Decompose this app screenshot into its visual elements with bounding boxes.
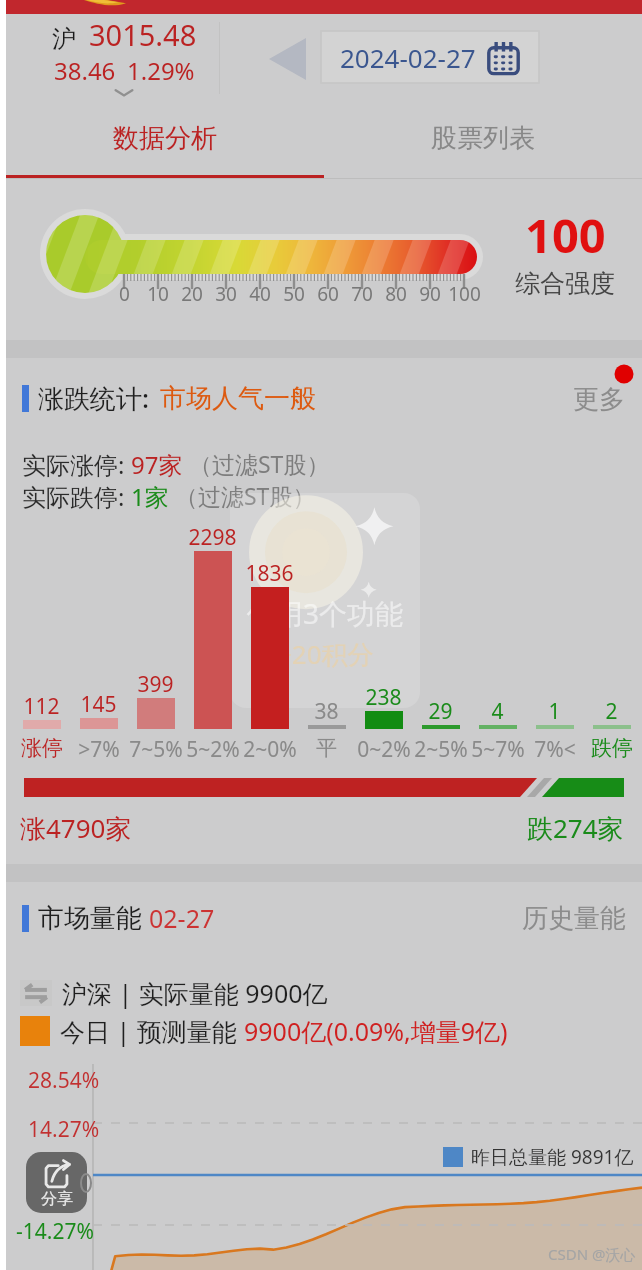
staticText: 2298 xyxy=(188,523,237,552)
staticText: 9900亿(0.09%,增量9亿) xyxy=(244,1014,508,1048)
staticText: 今日 | 预测量能 xyxy=(60,1014,244,1048)
staticText: 市场人气一般 xyxy=(160,382,316,415)
button[interactable]: 数据分析 xyxy=(6,102,324,175)
staticText: 10 xyxy=(147,281,169,307)
staticText: >7% xyxy=(78,735,120,764)
staticText: 7~5% xyxy=(129,735,183,764)
staticText: 238 xyxy=(365,683,402,712)
staticText: 38.46 xyxy=(54,54,116,87)
staticText: CSDN @沃心 xyxy=(548,1244,636,1264)
staticText: 综合强度 xyxy=(515,268,615,299)
staticText: 昨日总量能 9891亿 xyxy=(471,1144,634,1170)
staticText: 2024-02-27 xyxy=(340,40,476,75)
button[interactable]: Share xyxy=(26,1152,87,1213)
staticText: 112 xyxy=(23,692,60,721)
staticText: 80 xyxy=(385,281,407,307)
staticText: 使用3个功能 xyxy=(247,594,404,632)
staticText: 70 xyxy=(351,281,373,307)
staticText: 实际涨停: xyxy=(22,448,131,481)
staticText: 14.27% xyxy=(28,1115,100,1144)
staticText: 沪 xyxy=(52,24,76,54)
staticText: 100 xyxy=(448,281,481,307)
staticText: 股票列表 xyxy=(431,122,535,155)
staticText: 7%< xyxy=(534,735,576,764)
staticText: 2 xyxy=(605,697,618,726)
staticText: 90 xyxy=(419,281,441,307)
staticText: 1家 xyxy=(131,480,169,513)
staticText: 数据分析 xyxy=(113,122,217,155)
staticText: 30 xyxy=(215,281,237,307)
staticText: 市场量能 xyxy=(38,902,142,935)
staticText: 20 xyxy=(181,281,203,307)
button[interactable]: 使用3个功能 xyxy=(230,493,420,708)
staticText: 2~0% xyxy=(243,735,297,764)
staticText: 分享 xyxy=(41,1189,73,1209)
staticText: 1.29% xyxy=(127,54,195,87)
staticText: 涨停 xyxy=(21,735,63,761)
staticText: 02-27 xyxy=(149,901,215,935)
button[interactable]: 历史量能 xyxy=(514,900,634,936)
staticText: 跌停 xyxy=(591,735,633,761)
staticText: 97家 xyxy=(131,448,183,481)
staticText: 0~2% xyxy=(357,735,411,764)
staticText: （过滤ST股） xyxy=(183,448,330,479)
staticText: 更多 xyxy=(573,383,625,416)
button[interactable]: 沪 xyxy=(34,15,214,97)
staticText: +20积分 xyxy=(277,636,374,672)
staticText: 历史量能 xyxy=(522,902,626,935)
staticText: 0 xyxy=(119,281,130,307)
staticText: 1836 xyxy=(245,559,294,588)
button[interactable]: 更多 xyxy=(564,380,634,418)
staticText: 145 xyxy=(80,690,117,719)
staticText: 38 xyxy=(314,697,339,726)
staticText: 实际跌停: xyxy=(22,480,131,513)
staticText: 4 xyxy=(491,697,504,726)
staticText: 50 xyxy=(283,281,305,307)
staticText: 2~5% xyxy=(414,735,468,764)
button[interactable]: 2024-02-27 xyxy=(321,31,539,83)
button[interactable]: 股票列表 xyxy=(324,102,642,175)
staticText: 平 xyxy=(316,735,337,761)
staticText: 40 xyxy=(249,281,271,307)
staticText: 5~2% xyxy=(186,735,240,764)
staticText: 涨4790家 xyxy=(20,810,132,846)
staticText: 100 xyxy=(525,203,606,267)
staticText: 60 xyxy=(317,281,339,307)
staticText: 1 xyxy=(548,697,561,726)
staticText: 跌274家 xyxy=(527,810,624,846)
staticText: 5~7% xyxy=(471,735,525,764)
staticText: （过滤ST股） xyxy=(169,480,316,511)
staticText: 28.54% xyxy=(28,1066,100,1095)
staticText: 涨跌统计: xyxy=(38,380,150,416)
staticText: 3015.48 xyxy=(89,15,197,54)
staticText: 29 xyxy=(428,697,453,726)
button[interactable]: Previous day xyxy=(258,31,316,87)
staticText: 沪深 | 实际量能 9900亿 xyxy=(62,976,328,1010)
staticText: 399 xyxy=(137,670,174,699)
staticText: -14.27% xyxy=(16,1217,94,1246)
